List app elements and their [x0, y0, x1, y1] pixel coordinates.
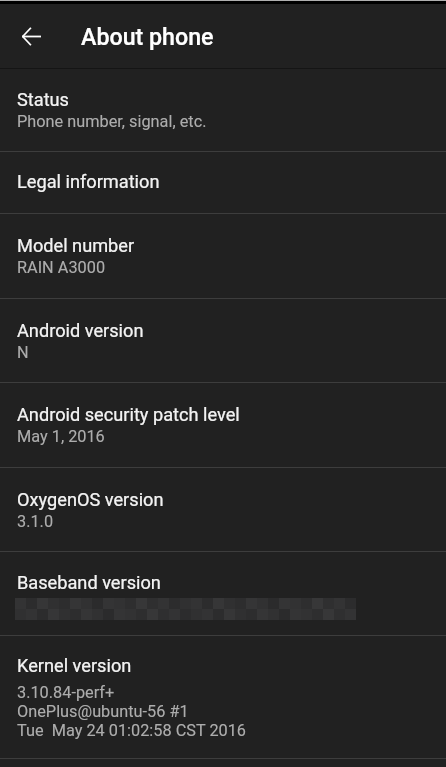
- staticText: Baseband version: [17, 572, 161, 593]
- staticText: 3.10.84-perf+ OnePlus@ubuntu-56 #1 Tue M…: [17, 683, 247, 740]
- staticText: Phone number, signal, etc.: [17, 112, 207, 131]
- button[interactable]: Legal information: [0, 152, 446, 213]
- staticText: N: [17, 343, 29, 362]
- button[interactable]: Android security patch level: [0, 383, 446, 467]
- staticText: OxygenOS version: [17, 489, 164, 510]
- button[interactable]: Model number: [0, 214, 446, 298]
- button[interactable]: Navigate up: [0, 8, 56, 64]
- staticText: Android version: [17, 320, 144, 341]
- staticText: May 1, 2016: [17, 427, 105, 446]
- button[interactable]: Android version: [0, 299, 446, 382]
- staticText: 3.1.0: [17, 512, 54, 531]
- button[interactable]: Kernel version: [0, 636, 446, 758]
- staticText: Status: [17, 89, 70, 110]
- staticText: Kernel version: [17, 655, 132, 676]
- button[interactable]: OxygenOS version: [0, 468, 446, 551]
- staticText: About phone: [81, 23, 214, 50]
- staticText: RAIN A3000: [17, 258, 106, 277]
- button[interactable]: Status: [0, 69, 446, 151]
- staticText: Model number: [17, 235, 135, 256]
- staticText: Android security patch level: [17, 404, 240, 425]
- button[interactable]: Baseband version: [0, 552, 446, 635]
- staticText: Legal information: [17, 171, 160, 192]
